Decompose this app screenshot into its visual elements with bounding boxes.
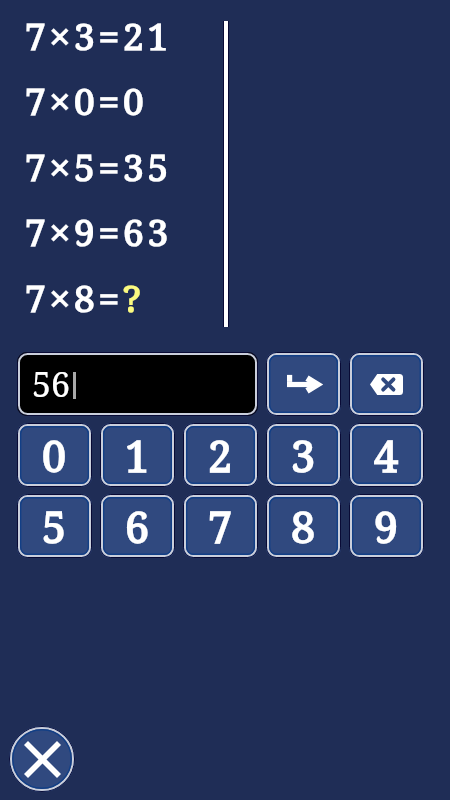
staticText: 7×0=0	[25, 75, 148, 125]
staticText: 7×9=63	[25, 206, 172, 256]
staticText: 56	[32, 361, 71, 407]
staticText: 1	[125, 426, 150, 485]
staticText: 4	[374, 426, 399, 485]
button[interactable]: 0	[17, 423, 92, 487]
staticText: 0	[42, 426, 67, 485]
button[interactable]: 4	[349, 423, 424, 487]
button[interactable]: 6	[100, 494, 175, 558]
button[interactable]: Backspace	[349, 352, 424, 416]
staticText: 2	[208, 426, 233, 485]
button[interactable]: 7	[183, 494, 258, 558]
staticText: 7×3=21	[25, 10, 172, 60]
staticText: 3	[291, 426, 316, 485]
button[interactable]: Close	[9, 726, 75, 792]
staticText: 6	[125, 497, 150, 556]
button[interactable]: 5	[17, 494, 92, 558]
button[interactable]: 8	[266, 494, 341, 558]
button[interactable]: 1	[100, 423, 175, 487]
staticText: ?	[123, 272, 145, 322]
staticText: 7	[208, 497, 233, 556]
button[interactable]: 9	[349, 494, 424, 558]
staticText: 7×5=35	[25, 141, 172, 191]
button[interactable]: 2	[183, 423, 258, 487]
staticText: 5	[42, 497, 67, 556]
button[interactable]: Enter	[266, 352, 341, 416]
button[interactable]: 56	[17, 352, 258, 416]
staticText: 9	[374, 497, 399, 556]
staticText: 8	[291, 497, 316, 556]
button[interactable]: 3	[266, 423, 341, 487]
staticText: 7×8=	[25, 272, 123, 322]
